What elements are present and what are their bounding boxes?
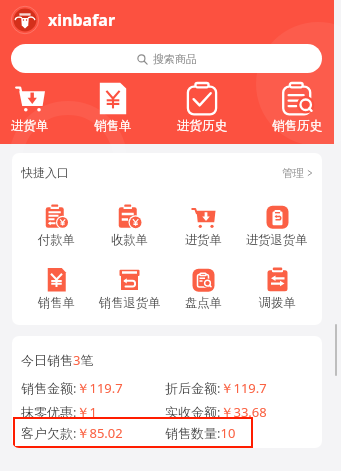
staticText: 进货历史 [177, 118, 227, 134]
staticText: 快捷入口 [21, 165, 69, 180]
staticText: 实收金额:￥33.68 [165, 403, 322, 421]
button[interactable]: 搜索商品 [11, 44, 322, 73]
staticText: 销售历史 [272, 118, 322, 134]
staticText: 进货单 [185, 232, 222, 247]
staticText: 收款单 [111, 232, 148, 247]
staticText: 抹零优惠:￥1 [21, 403, 165, 421]
staticText: 管理 [282, 166, 304, 180]
staticText: 客户欠款:￥85.02 [21, 424, 165, 442]
staticText: 销售金额:￥119.7 [21, 379, 165, 397]
button[interactable]: 进货单 [11, 82, 49, 134]
staticText: 进货单 [11, 118, 49, 134]
button[interactable]: 调拨单 [240, 267, 314, 310]
button[interactable]: 盘点单 [166, 267, 240, 310]
staticText: 搜索商品 [153, 52, 197, 66]
button[interactable]: 收款单 [93, 204, 166, 247]
staticText: 折后金额:￥119.7 [165, 379, 322, 397]
button[interactable]: 管理 [282, 166, 313, 180]
staticText: 今日销售3笔 [21, 351, 94, 369]
staticText: 调拨单 [259, 295, 296, 310]
button[interactable]: 销售退货单 [93, 267, 166, 310]
button[interactable]: 进货退货单 [240, 204, 314, 247]
staticText: 盘点单 [185, 295, 222, 310]
button[interactable]: 付款单 [20, 204, 93, 247]
button[interactable]: 销售单 [20, 267, 93, 310]
other: Logo [11, 6, 39, 34]
staticText: 进货退货单 [246, 232, 308, 247]
staticText: xinbafar [48, 9, 116, 31]
staticText: 销售单 [94, 118, 132, 134]
button[interactable]: 进货单 [166, 204, 240, 247]
staticText: 付款单 [38, 232, 75, 247]
staticText: 销售单 [38, 295, 75, 310]
staticText: 销售退货单 [99, 295, 161, 310]
button[interactable]: 进货历史 [177, 82, 227, 134]
button[interactable]: 销售单 [94, 82, 132, 134]
button[interactable]: 销售历史 [272, 82, 322, 134]
staticText: 销售数量:10 [165, 424, 253, 442]
